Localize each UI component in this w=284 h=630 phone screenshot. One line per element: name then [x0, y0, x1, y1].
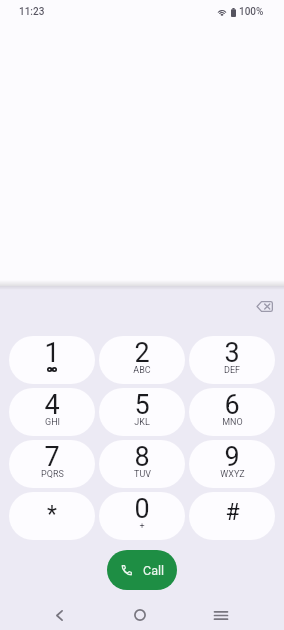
staticText: PQRS — [41, 469, 64, 480]
staticText: TUV — [134, 469, 151, 480]
staticText: GHI — [45, 417, 60, 428]
button[interactable]: 2 — [99, 336, 185, 384]
staticText: 4 — [44, 389, 60, 421]
button[interactable]: Recents — [206, 600, 236, 630]
staticText: 8 — [134, 441, 150, 473]
staticText: 100% — [239, 6, 264, 18]
button[interactable]: Call — [107, 550, 177, 590]
button[interactable]: # — [189, 492, 275, 540]
staticText: JKL — [134, 417, 150, 428]
staticText: * — [47, 501, 57, 528]
button[interactable]: 6 — [189, 388, 275, 436]
button[interactable]: 9 — [189, 440, 275, 488]
staticText: + — [139, 521, 145, 532]
staticText: DEF — [224, 365, 240, 376]
staticText: 9 — [224, 441, 240, 473]
staticText: MNO — [222, 417, 243, 428]
button[interactable]: * — [9, 492, 95, 540]
staticText: # — [225, 499, 240, 526]
staticText: 7 — [44, 441, 60, 473]
staticText: 2 — [134, 337, 150, 369]
button[interactable]: 0 — [99, 492, 185, 540]
button[interactable]: 5 — [99, 388, 185, 436]
staticText: WXYZ — [220, 469, 245, 480]
button[interactable]: 1 — [9, 336, 95, 384]
staticText: Call — [143, 563, 165, 578]
staticText: 0 — [134, 493, 150, 525]
staticText: 3 — [224, 337, 240, 369]
staticText: 11:23 — [19, 6, 45, 18]
button[interactable]: Back — [44, 600, 74, 630]
button[interactable]: 4 — [9, 388, 95, 436]
staticText: 5 — [134, 389, 150, 421]
button[interactable]: 7 — [9, 440, 95, 488]
staticText: 6 — [224, 389, 240, 421]
staticText: 1 — [44, 337, 60, 369]
button[interactable]: Home — [125, 600, 155, 630]
button[interactable]: 3 — [189, 336, 275, 384]
staticText: ABC — [133, 365, 151, 376]
button[interactable]: 8 — [99, 440, 185, 488]
button[interactable]: Backspace — [247, 289, 281, 323]
